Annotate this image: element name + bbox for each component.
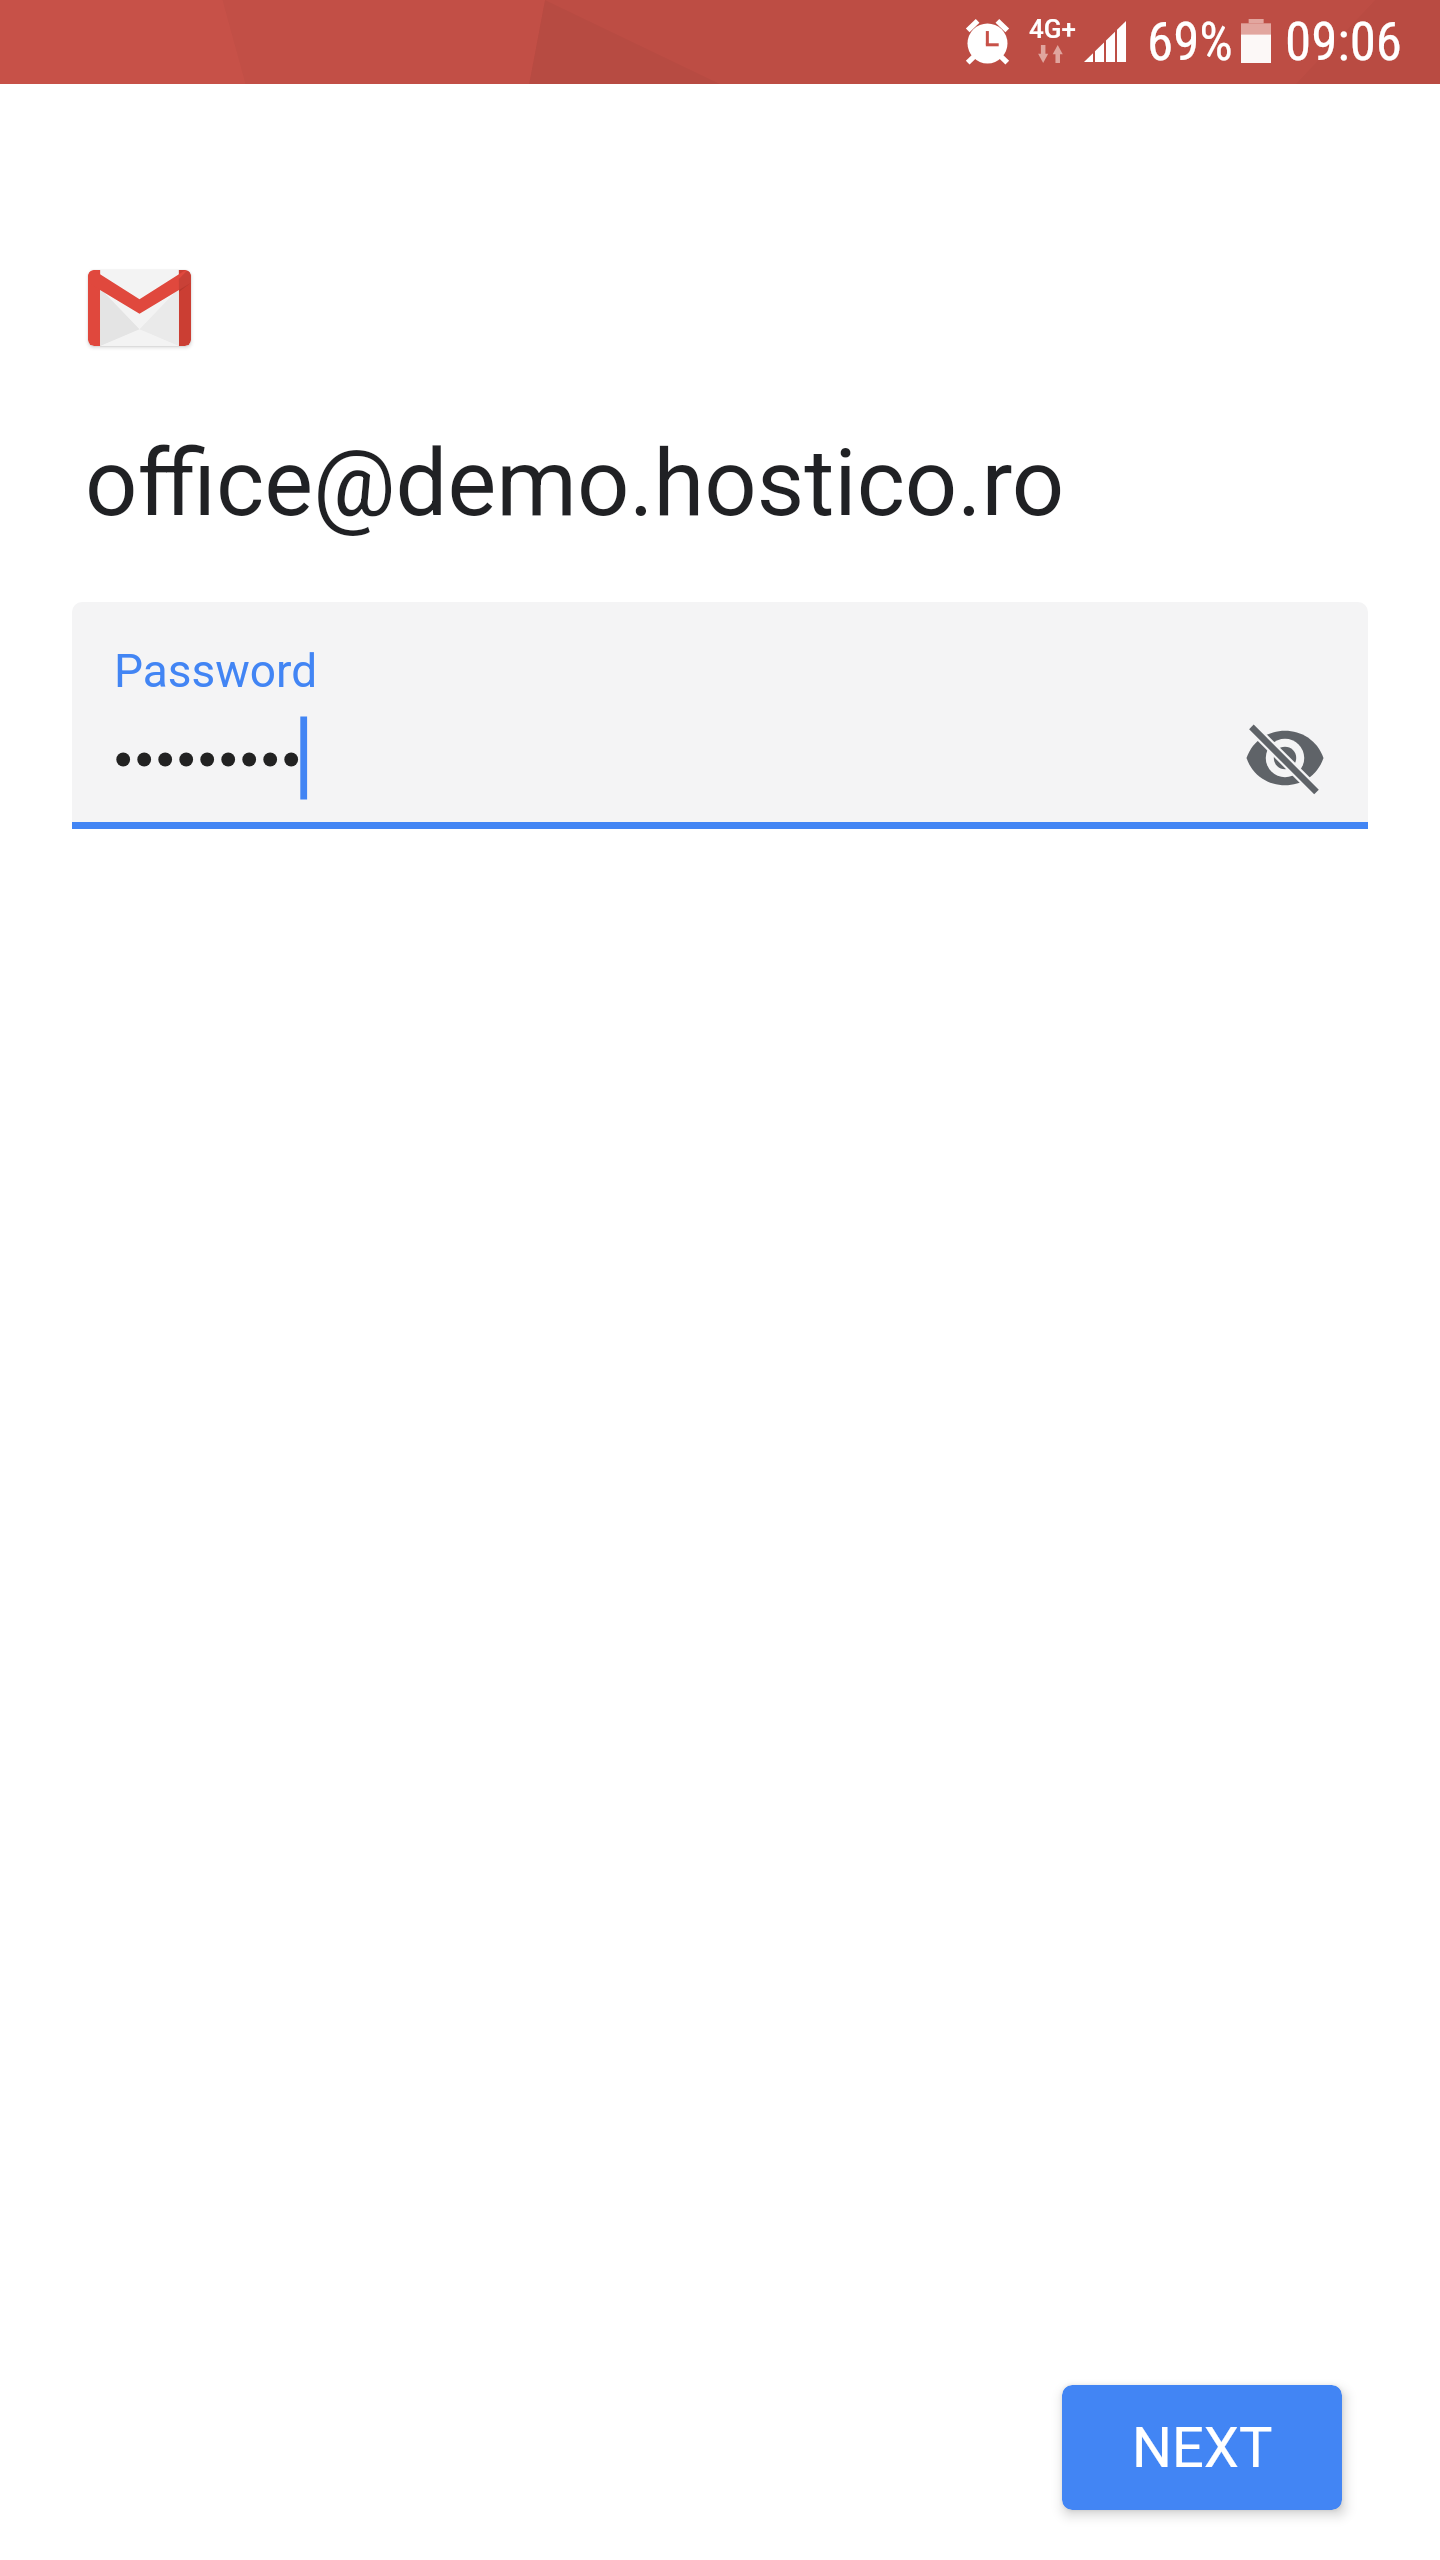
staticText: office@demo.hostico.ro: [85, 430, 1065, 538]
button[interactable]: NEXT: [1062, 2385, 1342, 2510]
staticText: 4G+: [1029, 14, 1076, 44]
button[interactable]: Show password: [1229, 702, 1341, 814]
staticText: Password: [114, 644, 318, 698]
staticText: NEXT: [1132, 2415, 1273, 2481]
staticText: 69%: [1147, 11, 1233, 73]
button[interactable]: Password: [72, 602, 1368, 822]
staticText: 09:06: [1285, 11, 1403, 73]
